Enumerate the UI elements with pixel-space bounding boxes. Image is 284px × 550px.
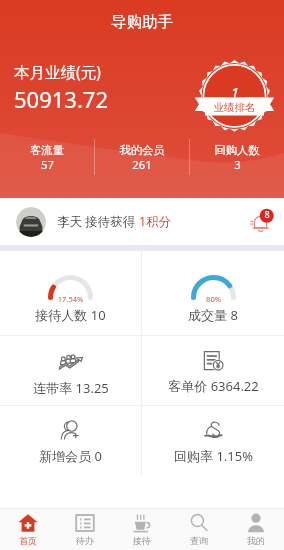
staticText: 新增会员 0 [39,447,102,465]
staticText: 261 [132,157,152,172]
staticText: 本月业绩(元) [14,61,101,82]
button[interactable]: 连带率 13.25 [0,336,141,405]
button[interactable]: 查询 [170,509,227,550]
button[interactable]: 通知 [246,207,276,237]
staticText: 8 [264,208,270,220]
button[interactable]: 新增会员 0 [0,406,141,475]
staticText: 业绩排名 [211,101,258,114]
staticText: 3 [234,157,241,172]
staticText: 待办 [76,535,94,546]
staticText: 客流量 [30,143,64,157]
staticText: 我的 [247,535,265,546]
staticText: 1 [229,82,241,102]
button[interactable]: 回购人数 [190,131,284,183]
staticText: 50913.72 [14,84,108,114]
staticText: 1积分 [139,213,172,230]
button[interactable]: 接待 [113,509,170,550]
button[interactable]: 客流量 [0,131,94,183]
button[interactable]: 我的 [227,509,284,550]
button[interactable]: 李天 接待获得 [0,198,284,245]
staticText: 80% [191,294,236,304]
button[interactable]: 回购率 1.15% [142,406,284,475]
staticText: 回购率 1.15% [174,447,253,465]
button[interactable]: 待办 [56,509,113,550]
button[interactable]: 首页 [0,509,56,550]
staticText: 回购人数 [214,143,260,157]
button[interactable]: 客单价 6364.22 [142,336,284,405]
staticText: 我的会员 [119,143,165,157]
staticText: 首页 [19,535,37,546]
staticText: 查询 [190,535,208,546]
staticText: 57 [41,157,54,172]
staticText: 成交量 8 [188,306,238,324]
button[interactable]: 我的会员 [95,131,189,183]
button[interactable]: 17.54% [0,251,141,335]
staticText: 导购助手 [111,12,173,32]
staticText: 李天 接待获得 [57,213,139,230]
staticText: 接待人数 10 [35,306,106,324]
staticText: 接待 [133,535,151,546]
button[interactable]: 80% [142,251,284,335]
staticText: 客单价 6364.22 [168,377,259,395]
staticText: 连带率 13.25 [33,379,109,397]
staticText: 17.54% [48,294,93,304]
